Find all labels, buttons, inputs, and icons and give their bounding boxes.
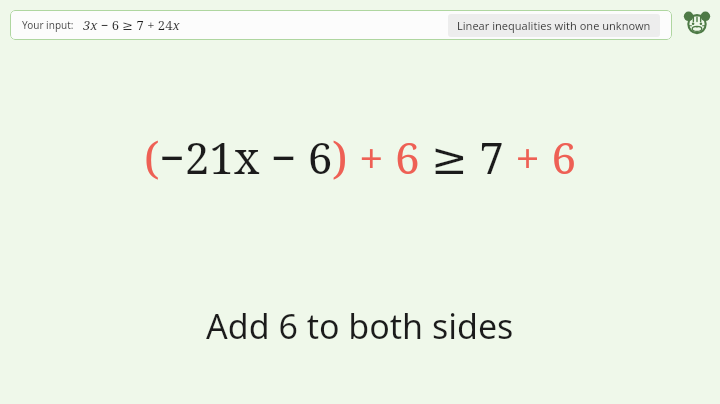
staticText: Add 6 to both sides <box>206 303 514 349</box>
button[interactable]: Logo <box>680 6 714 40</box>
staticText: 3x − 6 ≥ 7 + 24x <box>83 16 180 34</box>
staticText: Your input: <box>22 18 74 32</box>
staticText: Linear inequalities with one unknown <box>457 18 651 33</box>
staticText: (−21x − 6) + 6 ≥ 7 + 6 <box>144 127 576 187</box>
button[interactable]: Linear inequalities with one unknown <box>448 14 660 37</box>
button[interactable]: Your input: <box>10 10 672 40</box>
